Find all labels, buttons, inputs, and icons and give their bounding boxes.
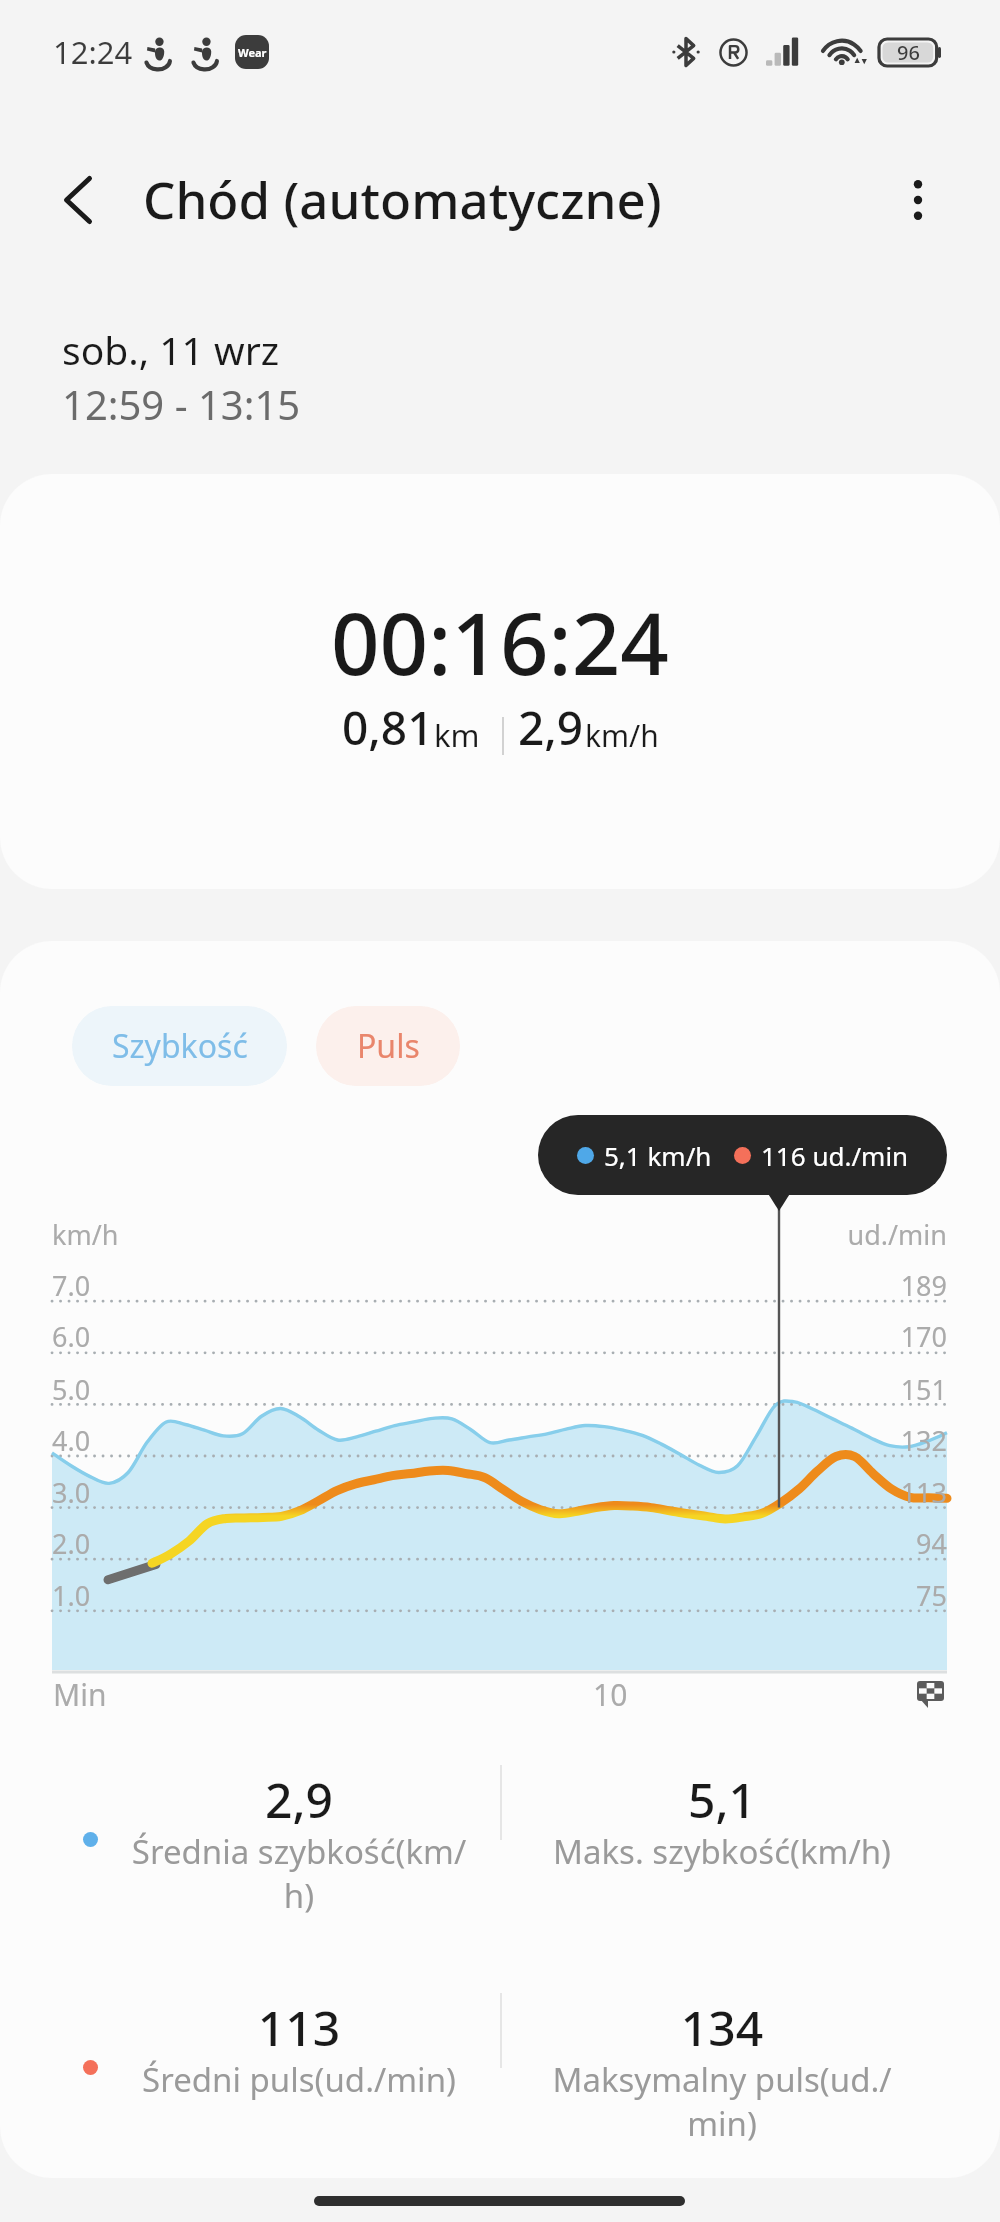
staticText: 12:59 - 13:15	[62, 377, 301, 431]
staticText: 12:24	[53, 31, 133, 73]
button[interactable]: 134	[485, 1995, 959, 2083]
staticText: Chód (automatyczne)	[143, 164, 662, 233]
staticText: 2.0	[52, 1525, 91, 1562]
button[interactable]: 5,1	[485, 1767, 959, 1832]
staticText: 75	[0, 1577, 947, 1614]
staticText: km	[434, 714, 480, 756]
staticText: 94	[0, 1525, 947, 1562]
staticText: 2,9	[518, 696, 584, 759]
staticText: Średni puls(ud./min)	[62, 2057, 536, 2102]
button[interactable]: Szybkość	[72, 1006, 287, 1086]
staticText: 151	[0, 1371, 947, 1408]
staticText: 132	[0, 1422, 947, 1459]
staticText: 0,81	[342, 696, 434, 759]
staticText: 3.0	[52, 1474, 91, 1511]
staticText: 5,1 km/h	[604, 1138, 712, 1173]
staticText: 5.0	[52, 1371, 91, 1408]
staticText: km/h	[52, 1216, 119, 1253]
button[interactable]: 5,1 km/h	[538, 1115, 947, 1195]
staticText: 170	[0, 1318, 947, 1355]
staticText: 7.0	[52, 1267, 91, 1304]
staticText: Średnia szybkość(km/ h)	[62, 1829, 536, 1917]
staticText: Maksymalny puls(ud./ min)	[485, 2057, 959, 2145]
staticText: Maks. szybkość(km/h)	[485, 1829, 959, 1874]
button[interactable]: Puls	[316, 1006, 460, 1086]
staticText: 4.0	[52, 1422, 91, 1459]
staticText: 5,1	[485, 1767, 959, 1832]
staticText: Min	[53, 1674, 107, 1715]
button[interactable]: More options	[868, 150, 968, 250]
staticText: Puls	[357, 1024, 420, 1068]
staticText: Szybkość	[112, 1024, 248, 1068]
staticText: Wear	[238, 45, 267, 60]
button[interactable]: 113	[62, 1995, 536, 2060]
staticText: sob., 11 wrz	[62, 323, 280, 376]
staticText: 134	[485, 1995, 959, 2060]
staticText: 189	[0, 1267, 947, 1304]
staticText: 2,9	[62, 1767, 536, 1832]
staticText: 1.0	[52, 1577, 91, 1614]
staticText: ud./min	[0, 1216, 947, 1253]
staticText: 10	[593, 1674, 628, 1715]
staticText: 116 ud./min	[761, 1138, 909, 1173]
staticText: 6.0	[52, 1318, 91, 1355]
staticText: 113	[0, 1474, 947, 1511]
button[interactable]: 2,9	[62, 1767, 536, 1855]
staticText: 113	[62, 1995, 536, 2060]
staticText: km/h	[585, 715, 659, 756]
button[interactable]: Back	[22, 144, 134, 256]
staticText: 96	[897, 39, 920, 66]
staticText: 00:16:24	[331, 584, 669, 700]
